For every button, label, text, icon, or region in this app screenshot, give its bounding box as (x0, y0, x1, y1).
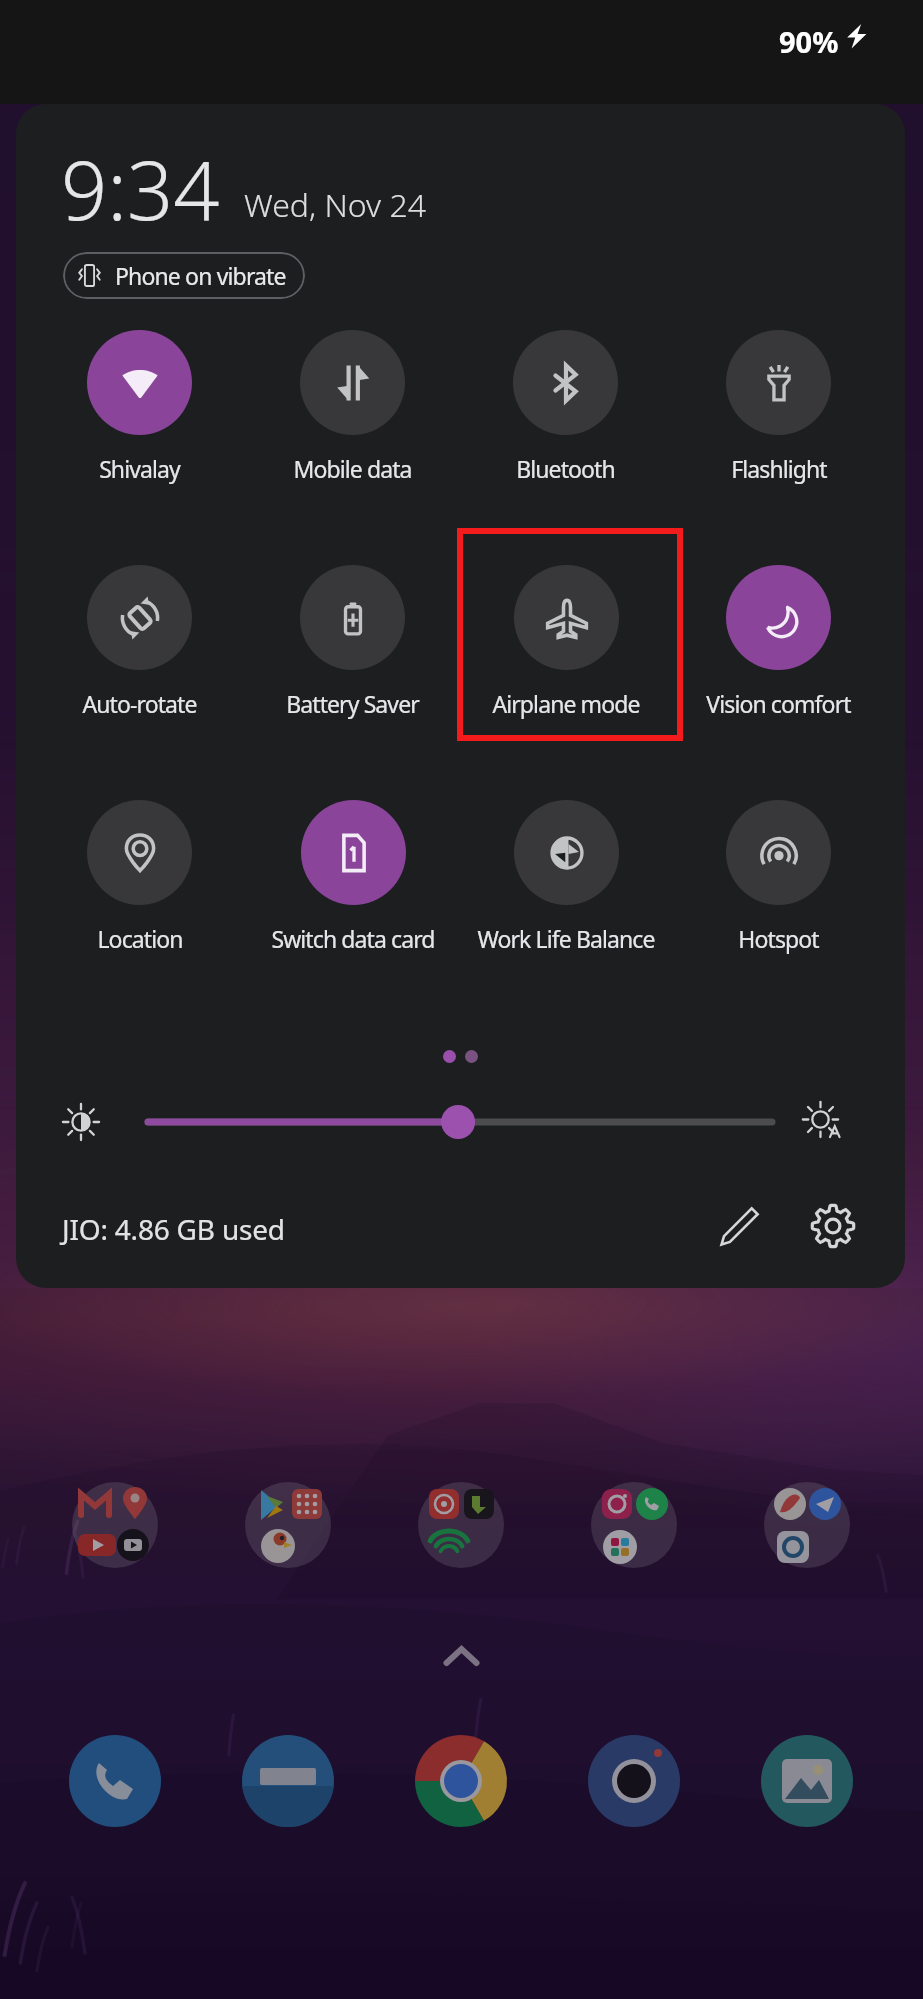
button[interactable]: Mobile data (246, 330, 459, 520)
staticText: Shivalay (99, 453, 180, 484)
staticText: 90% (779, 22, 839, 61)
staticText: Switch data card (271, 923, 435, 954)
staticText: Battery Saver (286, 688, 419, 719)
button[interactable]: Work Life Balance (459, 800, 672, 990)
button[interactable]: Auto brightness (802, 1101, 844, 1143)
button[interactable]: Gallery (761, 1735, 853, 1827)
button[interactable]: Tools folder (245, 1484, 331, 1570)
staticText: Flashlight (731, 453, 827, 484)
button[interactable]: Page 2 (465, 1050, 478, 1063)
button[interactable]: Settings (805, 1198, 861, 1254)
staticText: Bluetooth (516, 453, 615, 484)
staticText: Phone on vibrate (115, 260, 286, 291)
button[interactable]: Auto-rotate (33, 565, 246, 755)
staticText: Location (97, 923, 183, 954)
staticText: Airplane mode (492, 688, 640, 719)
button[interactable]: Shivalay (33, 330, 246, 520)
button[interactable]: Brightness (60, 1101, 102, 1143)
button[interactable]: Page 1 (443, 1050, 456, 1063)
button[interactable]: Hotspot (672, 800, 885, 990)
button[interactable]: Edit (712, 1198, 768, 1254)
button[interactable]: Airplane mode (459, 565, 672, 755)
button[interactable]: Vision comfort (672, 565, 885, 755)
button[interactable]: Flashlight (672, 330, 885, 520)
button[interactable]: Chrome (415, 1735, 507, 1827)
staticText: Hotspot (738, 923, 819, 954)
button[interactable]: Phone (69, 1735, 161, 1827)
button[interactable]: Location (33, 800, 246, 990)
button[interactable]: Camera (588, 1735, 680, 1827)
staticText: Auto-rotate (82, 688, 197, 719)
button[interactable]: Messages (242, 1735, 334, 1827)
button[interactable]: Phone on vibrate (63, 252, 305, 299)
button[interactable]: Utilities folder (764, 1484, 850, 1570)
button[interactable]: Battery Saver (246, 565, 459, 755)
button[interactable]: Open app drawer (431, 1630, 491, 1690)
staticText: Work Life Balance (477, 923, 655, 954)
staticText: JIO: 4.86 GB used (62, 1210, 285, 1248)
staticText: Mobile data (293, 453, 412, 484)
button[interactable]: Social folder (591, 1484, 677, 1570)
staticText: 9:34 (61, 133, 220, 243)
button[interactable]: Brightness slider (142, 1092, 778, 1152)
button[interactable]: Music folder (418, 1484, 504, 1570)
button[interactable]: Google apps folder (72, 1484, 158, 1570)
button[interactable]: Switch data card (246, 800, 459, 990)
button[interactable]: Bluetooth (459, 330, 672, 520)
staticText: Wed, Nov 24 (244, 183, 426, 227)
staticText: Vision comfort (706, 688, 851, 719)
